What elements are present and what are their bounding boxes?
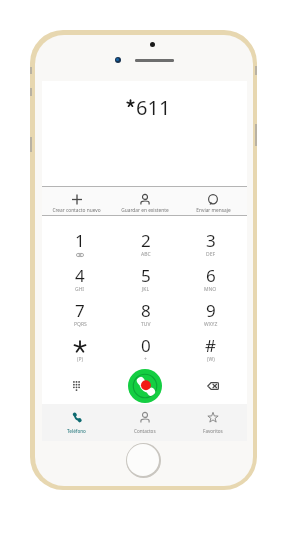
staticText: Crear contacto nuevo <box>52 207 101 214</box>
button[interactable]: 0 <box>113 329 178 364</box>
button[interactable]: Teléfono <box>42 404 111 441</box>
staticText: 611 <box>136 94 171 121</box>
button[interactable]: 9 <box>178 294 243 329</box>
staticText: 4 <box>75 264 85 287</box>
button[interactable]: 4 <box>47 259 113 294</box>
button[interactable]: 5 <box>113 259 178 294</box>
staticText: 5 <box>141 264 151 287</box>
staticText: 3 <box>206 229 216 252</box>
button[interactable]: Guardar en existente <box>111 187 179 215</box>
staticText: ABC <box>141 251 151 258</box>
button[interactable]: Teclado <box>42 368 111 404</box>
staticText: 8 <box>141 299 151 322</box>
staticText: JKL <box>142 286 150 293</box>
staticText: (W) <box>207 356 215 363</box>
staticText: Teléfono <box>67 428 86 434</box>
button[interactable]: Borrar <box>179 368 247 404</box>
staticText: # <box>205 334 216 357</box>
button[interactable]: Enviar mensaje <box>179 187 247 215</box>
staticText: Enviar mensaje <box>196 207 231 214</box>
staticText: 0 <box>141 334 151 357</box>
staticText: + <box>144 356 147 363</box>
button[interactable]: Contactos <box>111 404 179 441</box>
button[interactable]: 2 <box>113 224 178 259</box>
button[interactable]: # <box>178 329 243 364</box>
staticText: MNO <box>204 286 217 293</box>
staticText: 6 <box>206 264 216 287</box>
staticText: 1 <box>75 229 85 252</box>
staticText: (P) <box>77 356 84 363</box>
button[interactable]: 1 <box>47 224 113 259</box>
staticText: GHI <box>75 286 85 293</box>
staticText: 7 <box>75 299 85 322</box>
staticText: WXYZ <box>204 321 218 328</box>
staticText: 2 <box>141 229 151 252</box>
button[interactable]: Llamar <box>128 369 162 403</box>
staticText: Contactos <box>134 428 156 434</box>
staticText: Favoritos <box>203 428 223 434</box>
staticText: PQRS <box>74 321 87 328</box>
button[interactable]: 7 <box>47 294 113 329</box>
staticText: TUV <box>141 321 151 328</box>
button[interactable]: Crear contacto nuevo <box>42 187 111 215</box>
button[interactable]: (P) <box>47 329 113 364</box>
staticText: 9 <box>206 299 216 322</box>
button[interactable]: 8 <box>113 294 178 329</box>
button[interactable]: 3 <box>178 224 243 259</box>
staticText: Guardar en existente <box>121 207 169 214</box>
button[interactable]: Favoritos <box>179 404 247 441</box>
button[interactable]: 6 <box>178 259 243 294</box>
staticText: DEF <box>206 251 216 258</box>
